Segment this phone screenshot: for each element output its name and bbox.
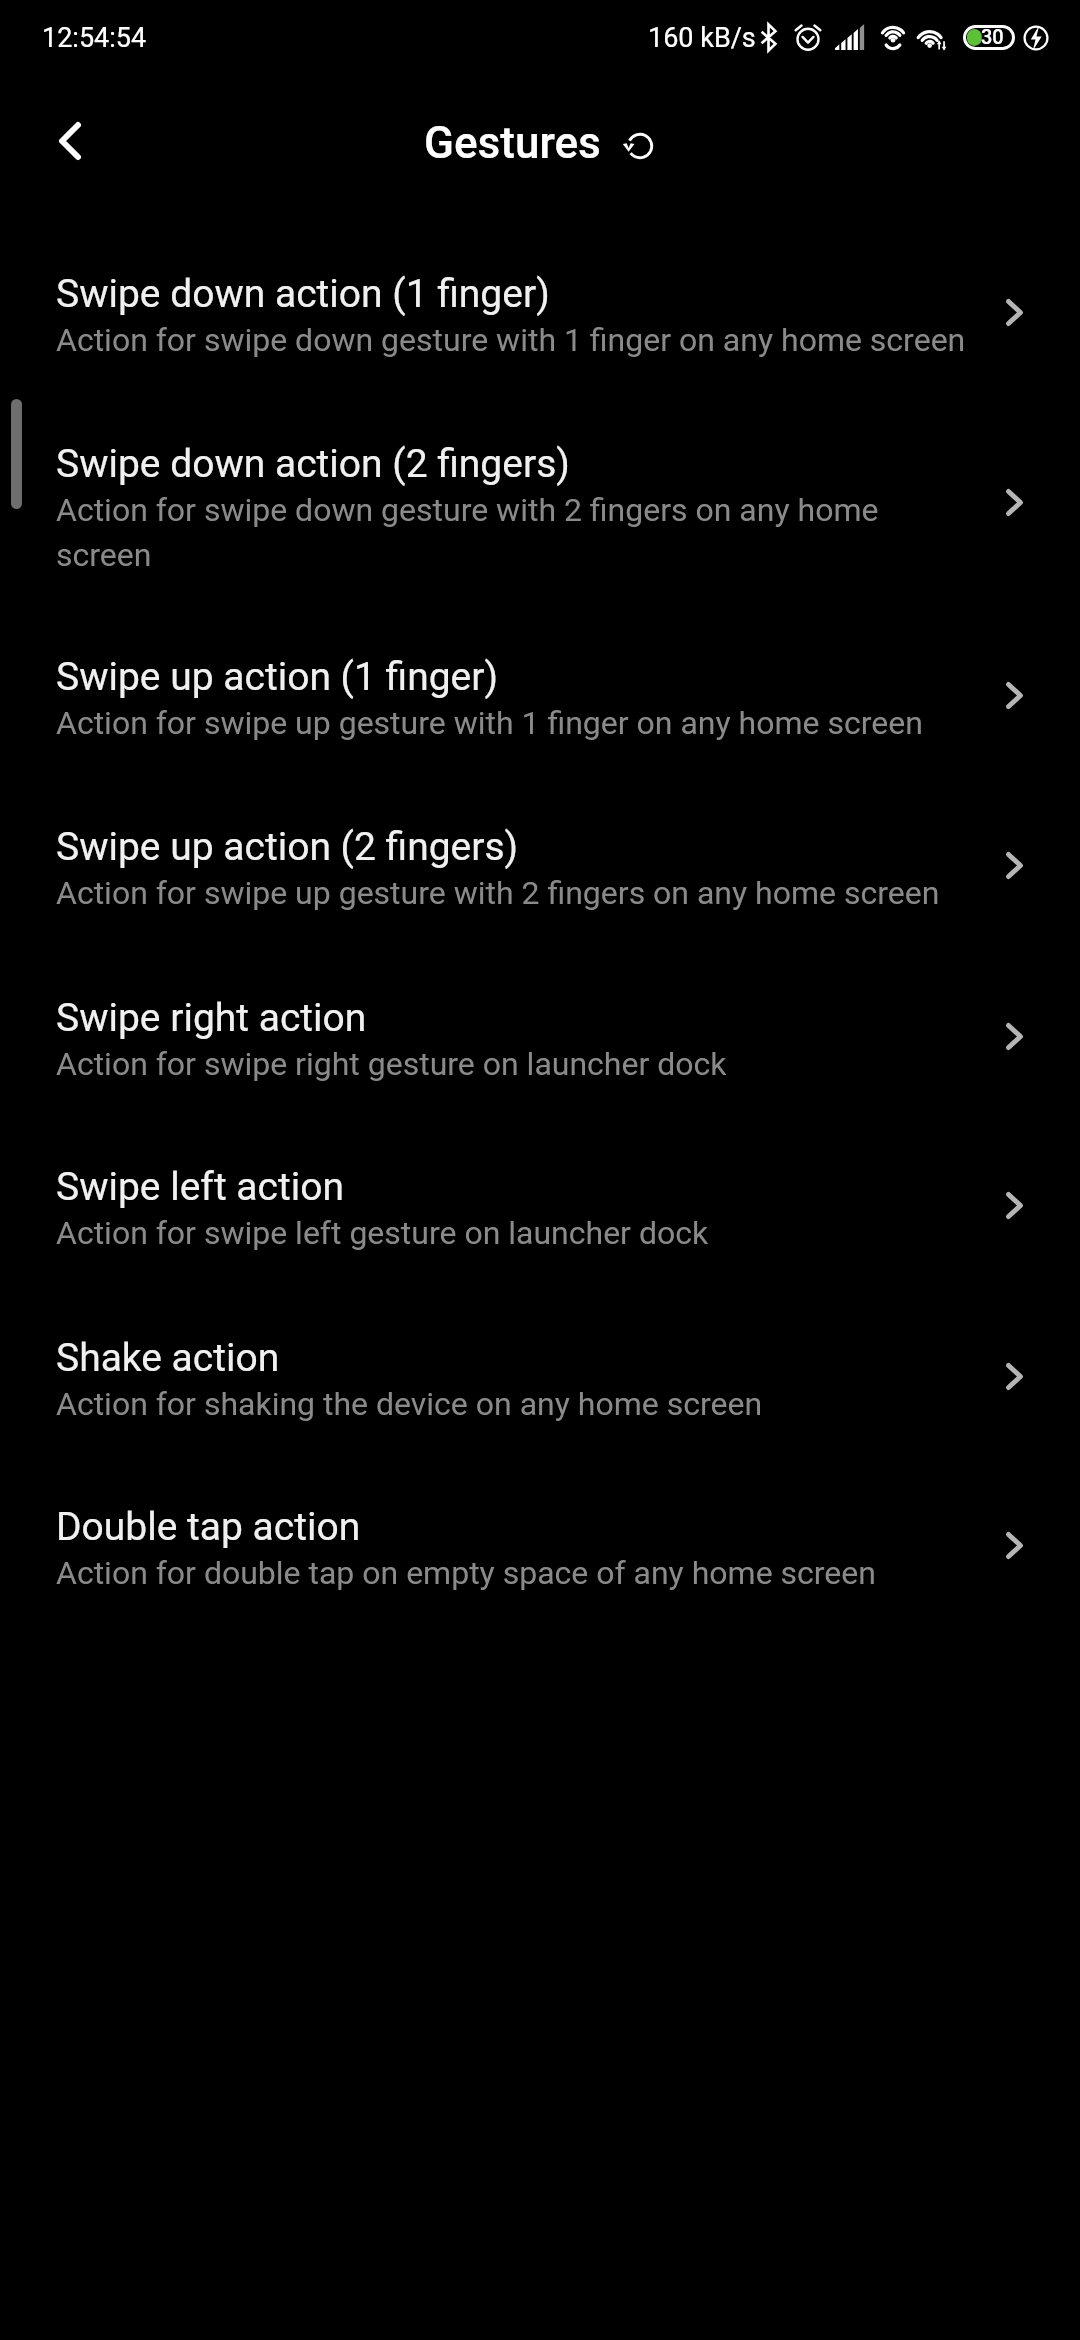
button[interactable]: Swipe down action (2 fingers): [0, 441, 1080, 654]
staticText: Action for swipe left gesture on launche…: [56, 1214, 709, 1252]
staticText: Swipe down action (1 finger): [56, 271, 550, 317]
staticText: Swipe left action: [56, 1164, 345, 1210]
staticText: Action for swipe down gesture with 1 fin…: [56, 321, 966, 359]
staticText: 30: [981, 25, 1004, 48]
staticText: Action for swipe right gesture on launch…: [56, 1045, 727, 1083]
button[interactable]: Swipe down action (1 finger): [0, 271, 1080, 441]
staticText: Shake action: [56, 1335, 280, 1381]
button[interactable]: Back: [30, 101, 110, 181]
button[interactable]: Swipe left action: [0, 1164, 1080, 1335]
staticText: 160 kB/s: [648, 22, 756, 54]
staticText: Action for swipe up gesture with 2 finge…: [56, 874, 940, 912]
staticText: Action for swipe up gesture with 1 finge…: [56, 704, 923, 742]
staticText: Swipe up action (1 finger): [56, 654, 499, 700]
staticText: Gestures: [424, 117, 601, 169]
button[interactable]: Double tap action: [0, 1504, 1080, 1673]
staticText: Action for swipe down gesture with 2 fin…: [56, 491, 972, 573]
button[interactable]: Swipe up action (2 fingers): [0, 824, 1080, 995]
staticText: Action for shaking the device on any hom…: [56, 1385, 763, 1423]
button[interactable]: Swipe right action: [0, 995, 1080, 1164]
staticText: Action for double tap on empty space of …: [56, 1554, 876, 1592]
staticText: Swipe up action (2 fingers): [56, 824, 519, 870]
staticText: Double tap action: [56, 1504, 361, 1550]
button[interactable]: Reset to default: [608, 114, 672, 178]
staticText: 12:54:54: [42, 22, 147, 54]
button[interactable]: Shake action: [0, 1335, 1080, 1504]
button[interactable]: Swipe up action (1 finger): [0, 654, 1080, 824]
staticText: Swipe right action: [56, 995, 367, 1041]
staticText: Swipe down action (2 fingers): [56, 441, 570, 487]
